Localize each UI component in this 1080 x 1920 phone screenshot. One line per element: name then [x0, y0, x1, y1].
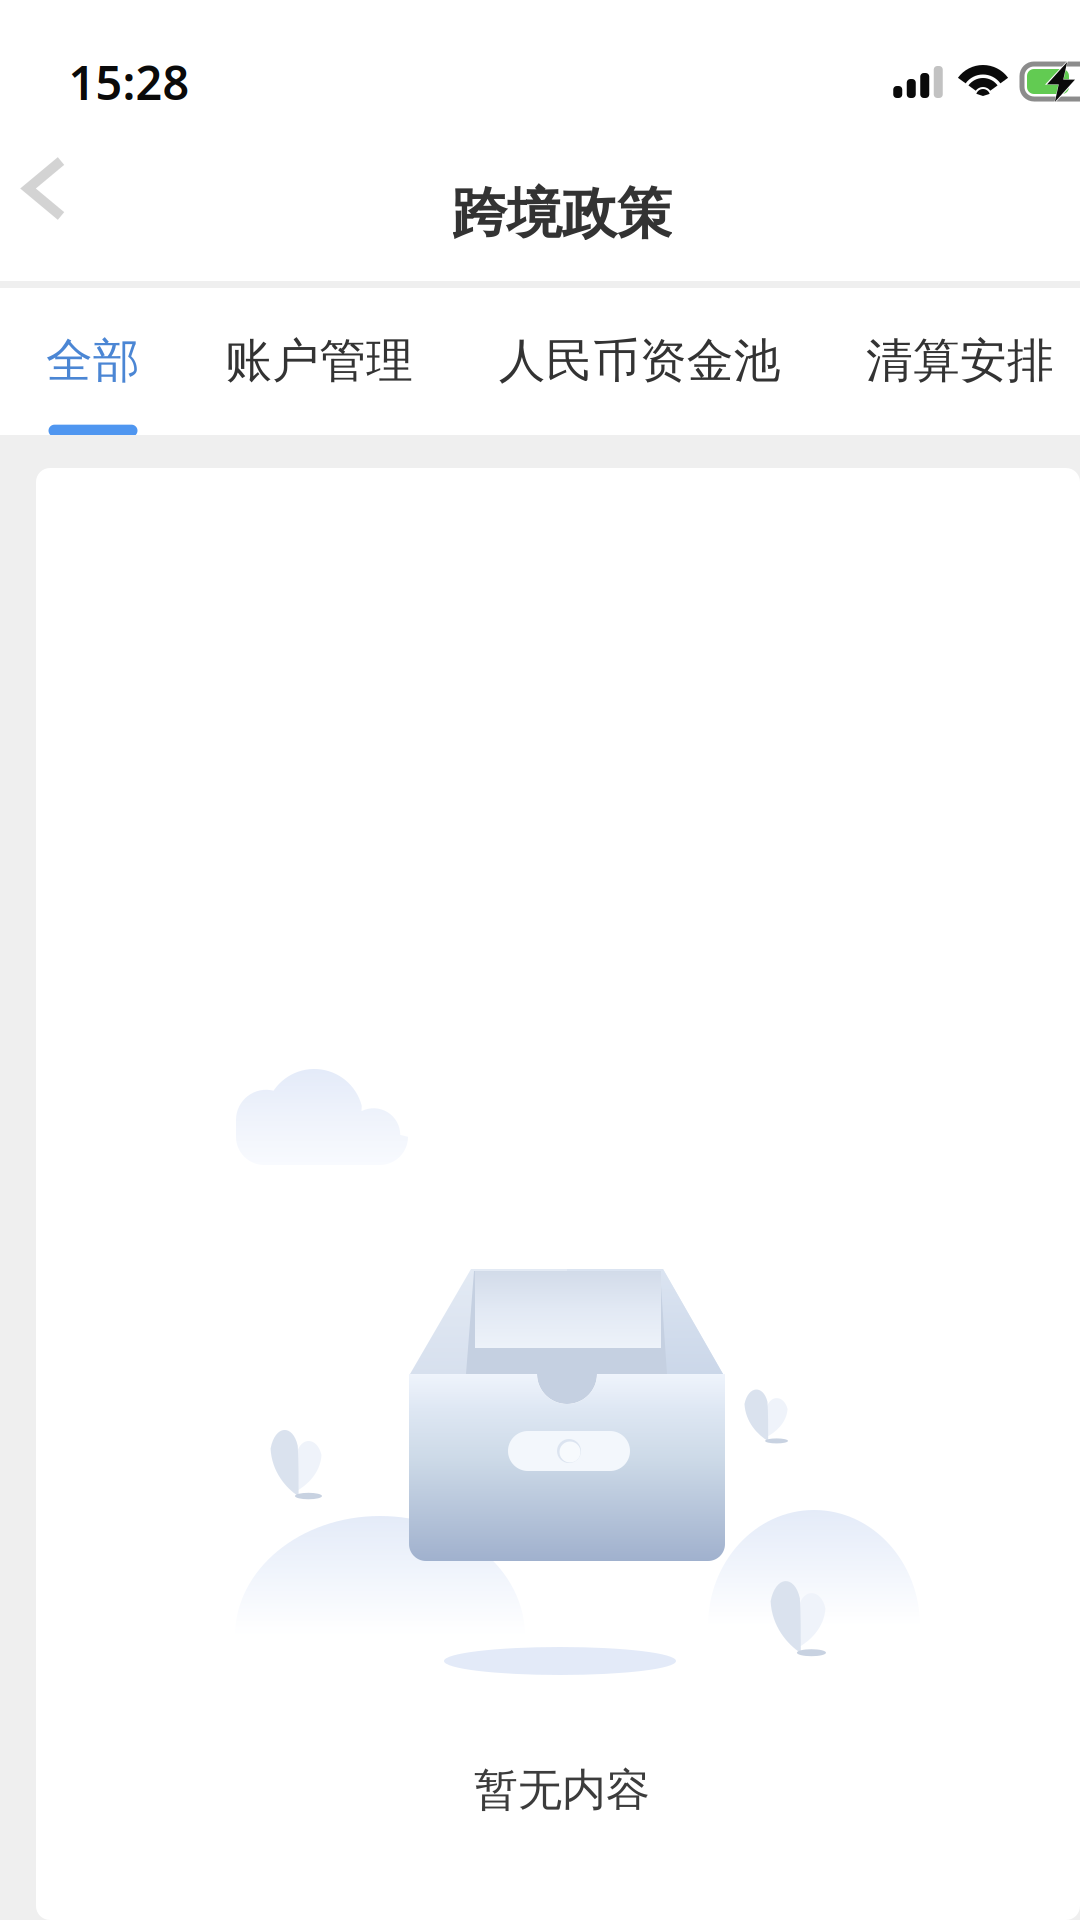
staticText: 账户管理 — [225, 332, 413, 390]
staticText: 跨境政策 — [452, 180, 672, 247]
button[interactable]: 账户管理 — [225, 286, 413, 437]
button[interactable]: 人民币资金池 — [499, 286, 781, 437]
button[interactable]: 全部 — [46, 286, 140, 437]
staticText: 人民币资金池 — [499, 332, 781, 390]
staticText: 全部 — [46, 332, 140, 390]
staticText: 清算安排 — [866, 332, 1054, 390]
staticText: 15:28 — [68, 51, 189, 113]
button[interactable]: 清算安排 — [866, 286, 1054, 437]
button[interactable]: Back — [0, 135, 105, 242]
staticText: 暂无内容 — [474, 1763, 650, 1817]
